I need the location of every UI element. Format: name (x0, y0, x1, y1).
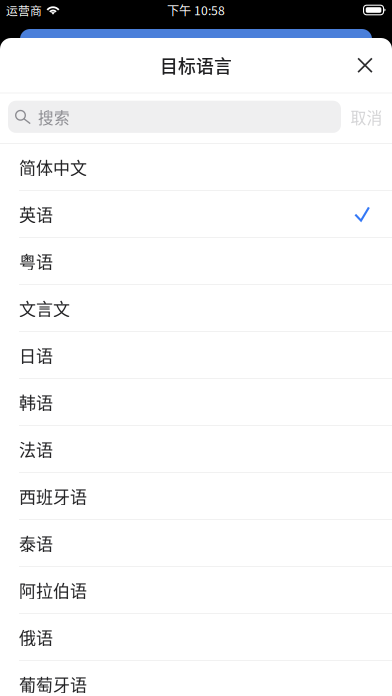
button[interactable]: 关闭 (338, 38, 392, 92)
staticText: 下午 10:58 (167, 1, 225, 19)
staticText: 搜索 (38, 105, 70, 128)
button[interactable]: 葡萄牙语 (0, 661, 392, 696)
staticText: 日语 (19, 343, 53, 367)
staticText: 韩语 (19, 390, 53, 414)
staticText: 俄语 (19, 625, 53, 649)
button[interactable]: 取消 (350, 101, 383, 132)
button[interactable]: 文言文 (0, 285, 392, 332)
staticText: 西班牙语 (19, 484, 87, 508)
staticText: 文言文 (19, 296, 70, 320)
button[interactable]: 西班牙语 (0, 473, 392, 520)
button[interactable]: 法语 (0, 426, 392, 473)
staticText: 目标语言 (160, 52, 232, 78)
staticText: 运营商 (6, 1, 42, 19)
staticText: 法语 (19, 437, 53, 461)
staticText: 阿拉伯语 (19, 578, 87, 602)
button[interactable]: 简体中文 (0, 144, 392, 191)
staticText: 简体中文 (19, 155, 87, 179)
staticText: 取消 (350, 105, 382, 128)
staticText: 粤语 (19, 249, 53, 273)
staticText: 英语 (19, 202, 53, 226)
button[interactable]: 日语 (0, 332, 392, 379)
button[interactable]: 粤语 (0, 238, 392, 285)
button[interactable]: 韩语 (0, 379, 392, 426)
button[interactable]: 泰语 (0, 520, 392, 567)
staticText: 葡萄牙语 (19, 672, 87, 696)
button[interactable]: 阿拉伯语 (0, 567, 392, 614)
button[interactable]: 搜索 (8, 101, 341, 133)
button[interactable]: 俄语 (0, 614, 392, 661)
button[interactable]: 英语 (0, 191, 392, 238)
staticText: 泰语 (19, 531, 53, 555)
